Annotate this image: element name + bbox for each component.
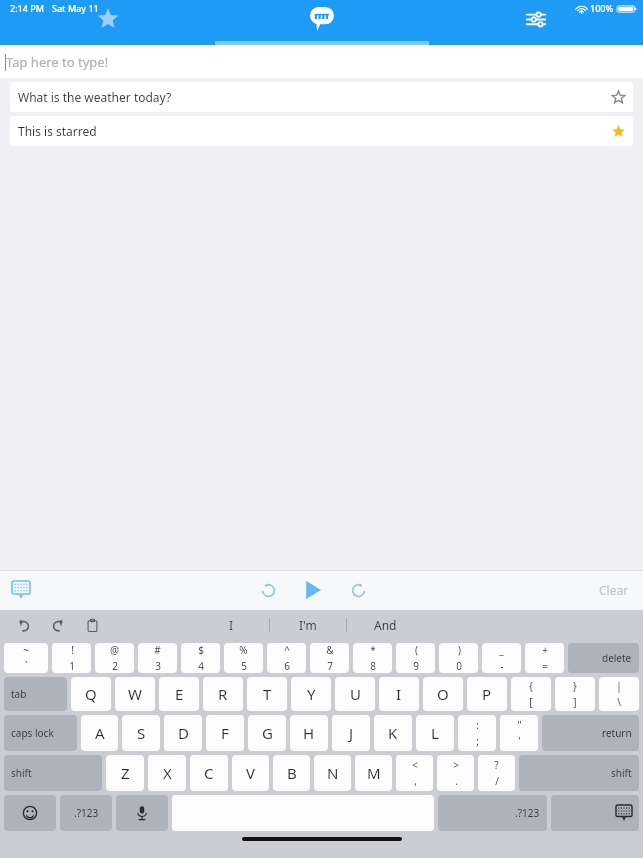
button[interactable]: ) — [439, 643, 478, 673]
button[interactable]: & — [310, 643, 349, 673]
button[interactable]: V — [232, 755, 269, 791]
button[interactable]: X — [148, 755, 186, 791]
button[interactable]: _ — [482, 643, 521, 673]
button[interactable]: | — [599, 677, 639, 711]
staticText: Tap here to type! — [6, 53, 109, 71]
button[interactable]: ? — [478, 755, 515, 791]
button[interactable]: K — [374, 715, 412, 751]
button[interactable]: Q — [71, 677, 111, 711]
button[interactable]: H — [290, 715, 328, 751]
button[interactable]: C — [190, 755, 228, 791]
button[interactable]: $ — [181, 643, 220, 673]
button[interactable]: Text — [215, 0, 429, 45]
button[interactable]: This is starred — [10, 116, 633, 146]
button[interactable]: tab — [4, 677, 67, 711]
button[interactable]: Clear — [593, 576, 635, 604]
staticText: E — [175, 684, 184, 704]
staticText: ' — [518, 734, 521, 748]
staticText: T — [263, 684, 272, 704]
button[interactable]: L — [416, 715, 454, 751]
button[interactable]: Star — [603, 82, 633, 112]
staticText: ? — [494, 758, 499, 772]
staticText: + — [542, 643, 548, 657]
button[interactable]: M — [355, 755, 392, 791]
button[interactable]: < — [396, 755, 433, 791]
button[interactable]: T — [247, 677, 287, 711]
button[interactable]: S — [122, 715, 160, 751]
staticText: - — [500, 659, 504, 673]
button[interactable]: Forward — [344, 576, 372, 604]
button[interactable]: Paste — [80, 613, 104, 637]
button[interactable]: kb — [551, 795, 639, 831]
staticText: shift — [611, 766, 632, 780]
staticText: A — [95, 723, 105, 743]
button[interactable]: + — [525, 643, 564, 673]
button[interactable]: @ — [95, 643, 134, 673]
button[interactable]: I — [379, 677, 419, 711]
button[interactable]: # — [138, 643, 177, 673]
button[interactable]: { — [511, 677, 551, 711]
button[interactable]: ! — [52, 643, 91, 673]
button[interactable]: return — [542, 715, 639, 751]
button[interactable]: A — [81, 715, 118, 751]
button[interactable]: caps lock — [4, 715, 77, 751]
button[interactable]: I — [193, 610, 269, 640]
button[interactable]: O — [423, 677, 463, 711]
button[interactable]: Redo — [46, 613, 70, 637]
button[interactable]: shift — [4, 755, 102, 791]
button[interactable]: .?123 — [438, 795, 547, 831]
button[interactable]: emoji — [4, 795, 56, 831]
staticText: : — [476, 718, 479, 732]
button[interactable]: % — [224, 643, 263, 673]
button[interactable]: Play — [298, 575, 328, 605]
button[interactable]: P — [467, 677, 507, 711]
button[interactable]: N — [314, 755, 351, 791]
button[interactable]: Tap here to type! — [0, 45, 643, 78]
button[interactable]: Rewind — [254, 576, 282, 604]
staticText: < — [412, 758, 418, 772]
button[interactable]: mic — [116, 795, 168, 831]
button[interactable]: G — [248, 715, 286, 751]
button[interactable]: F — [206, 715, 244, 751]
button[interactable]: J — [332, 715, 370, 751]
button[interactable]: > — [437, 755, 474, 791]
button[interactable]: ( — [396, 643, 435, 673]
staticText: R — [218, 684, 228, 704]
staticText: 100% — [590, 2, 614, 14]
button[interactable]: Unstar — [603, 116, 633, 146]
button[interactable]: ^ — [267, 643, 306, 673]
staticText: I — [396, 684, 402, 704]
button[interactable]: } — [555, 677, 595, 711]
button[interactable]: shift — [519, 755, 639, 791]
button[interactable]: D — [164, 715, 202, 751]
button[interactable]: W — [115, 677, 155, 711]
staticText: | — [616, 679, 622, 693]
button[interactable]: * — [353, 643, 392, 673]
staticText: G — [262, 723, 273, 743]
button[interactable]: Undo — [12, 613, 36, 637]
staticText: caps lock — [11, 726, 54, 740]
button[interactable]: " — [500, 715, 538, 751]
button[interactable]: And — [347, 610, 423, 640]
button[interactable]: U — [335, 677, 375, 711]
button[interactable]: delete — [568, 643, 639, 673]
staticText: & — [326, 643, 334, 657]
button[interactable]: .?123 — [60, 795, 112, 831]
button[interactable]: : — [458, 715, 496, 751]
button[interactable]: ~ — [4, 643, 48, 673]
button[interactable]: I'm — [270, 610, 346, 640]
button[interactable]: Z — [106, 755, 144, 791]
staticText: [ — [529, 695, 533, 709]
button[interactable]: Settings — [429, 0, 643, 45]
button[interactable]: Y — [291, 677, 331, 711]
button[interactable]: Favourites — [0, 0, 215, 45]
button[interactable]: What is the weather today? — [10, 82, 633, 112]
staticText: " — [517, 718, 522, 732]
button[interactable]: E — [159, 677, 199, 711]
staticText: H — [303, 723, 315, 743]
button[interactable]: R — [203, 677, 243, 711]
button[interactable]: Hide keyboard — [8, 577, 34, 603]
button[interactable]: B — [273, 755, 310, 791]
staticText: O — [437, 684, 449, 704]
